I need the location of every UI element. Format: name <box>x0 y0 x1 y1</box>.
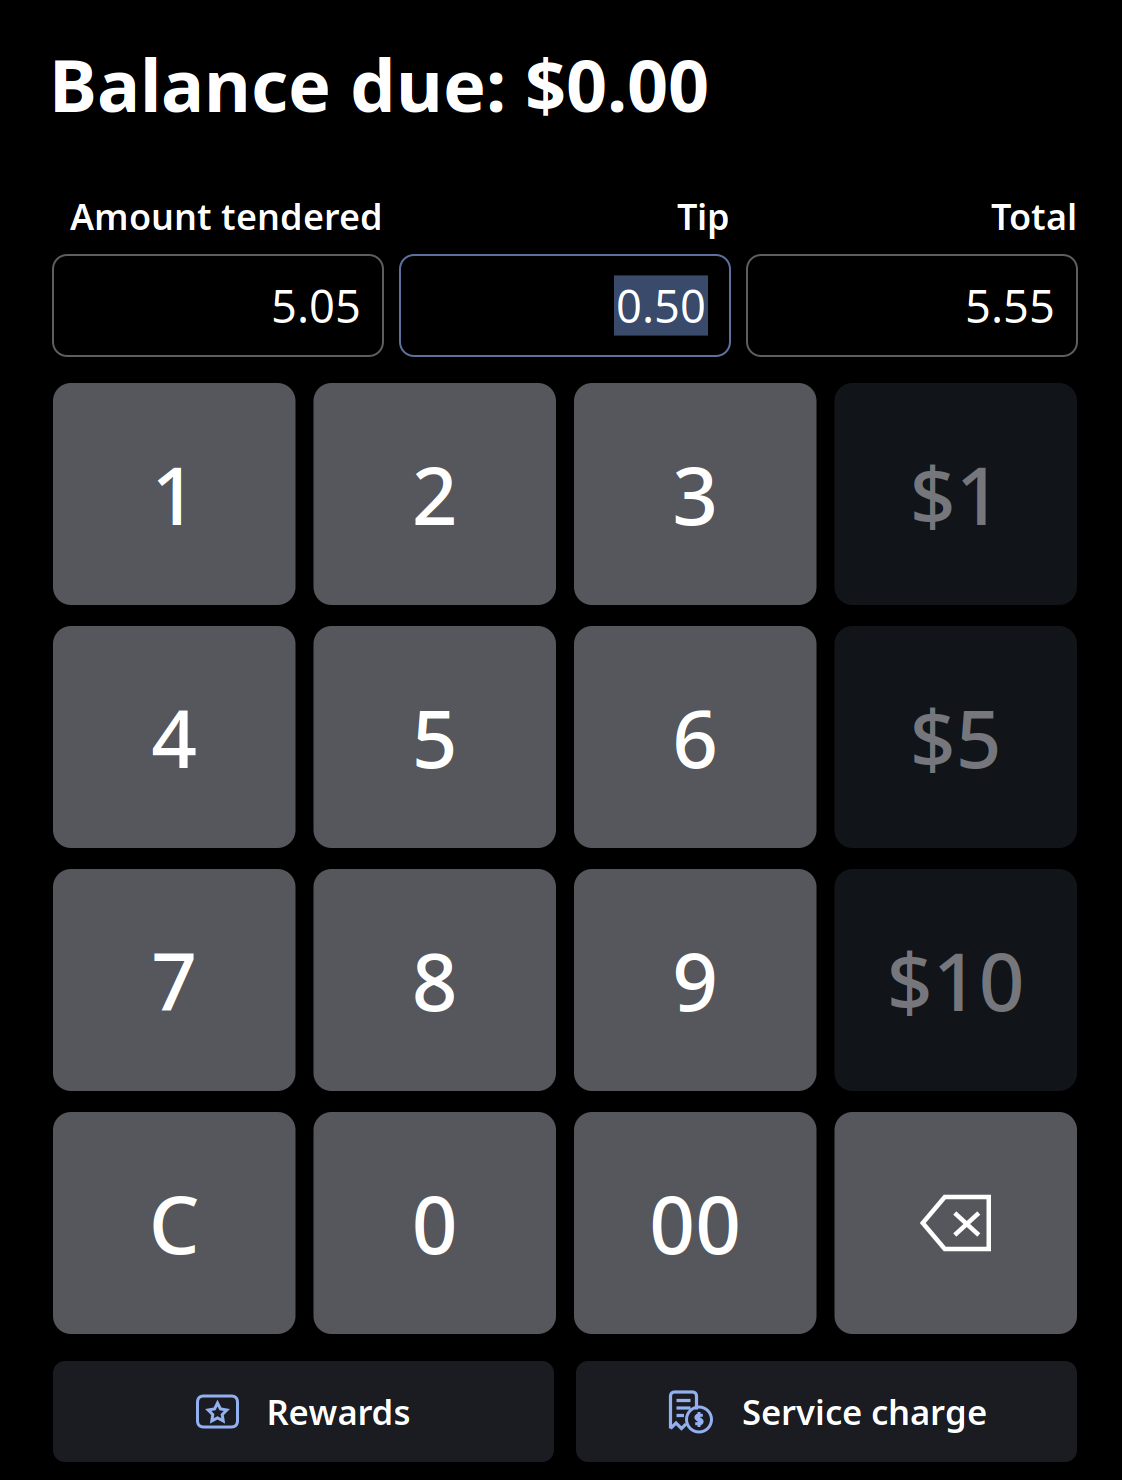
button[interactable]: 6 <box>574 626 816 848</box>
button[interactable]: Tip <box>400 255 730 356</box>
staticText: 7 <box>151 927 197 1033</box>
staticText: 5.05 <box>271 275 361 336</box>
staticText: 0.50 <box>616 275 706 336</box>
staticText: Amount tendered <box>70 192 383 240</box>
staticText: 00 <box>649 1170 741 1276</box>
button[interactable]: Delete <box>834 1112 1077 1334</box>
staticText: 3 <box>672 441 718 547</box>
staticText: 9 <box>672 927 718 1033</box>
button[interactable]: 5 <box>313 626 556 848</box>
button[interactable]: $5 <box>834 626 1077 848</box>
button[interactable]: 2 <box>313 383 556 605</box>
staticText: 0 <box>412 1170 458 1276</box>
staticText: 6 <box>672 684 718 790</box>
staticText: Rewards <box>266 1388 410 1434</box>
button[interactable]: $1 <box>834 383 1077 605</box>
button[interactable]: Service charge <box>576 1361 1077 1462</box>
button[interactable]: 7 <box>53 869 295 1091</box>
button[interactable]: 8 <box>313 869 556 1091</box>
button[interactable]: 00 <box>574 1112 816 1334</box>
button[interactable]: Total <box>747 255 1077 356</box>
staticText: 1 <box>151 441 197 547</box>
staticText: 8 <box>412 927 458 1033</box>
button[interactable]: 9 <box>574 869 816 1091</box>
staticText: Total <box>991 192 1077 240</box>
staticText: $5 <box>910 684 1002 790</box>
staticText: $10 <box>887 927 1025 1033</box>
staticText: C <box>149 1170 200 1276</box>
staticText: 2 <box>412 441 458 547</box>
button[interactable]: 4 <box>53 626 295 848</box>
button[interactable]: Amount tendered <box>53 255 383 356</box>
staticText: Tip <box>677 192 730 240</box>
staticText: Balance due: $0.00 <box>49 36 709 132</box>
button[interactable]: $10 <box>834 869 1077 1091</box>
staticText: $1 <box>910 441 1002 547</box>
button[interactable]: 0 <box>313 1112 556 1334</box>
staticText: 5 <box>412 684 458 790</box>
button[interactable]: C <box>53 1112 295 1334</box>
staticText: Service charge <box>742 1388 987 1434</box>
button[interactable]: Rewards <box>53 1361 554 1462</box>
staticText: 5.55 <box>965 275 1055 336</box>
button[interactable]: 1 <box>53 383 295 605</box>
button[interactable]: 3 <box>574 383 816 605</box>
staticText: 4 <box>151 684 197 790</box>
